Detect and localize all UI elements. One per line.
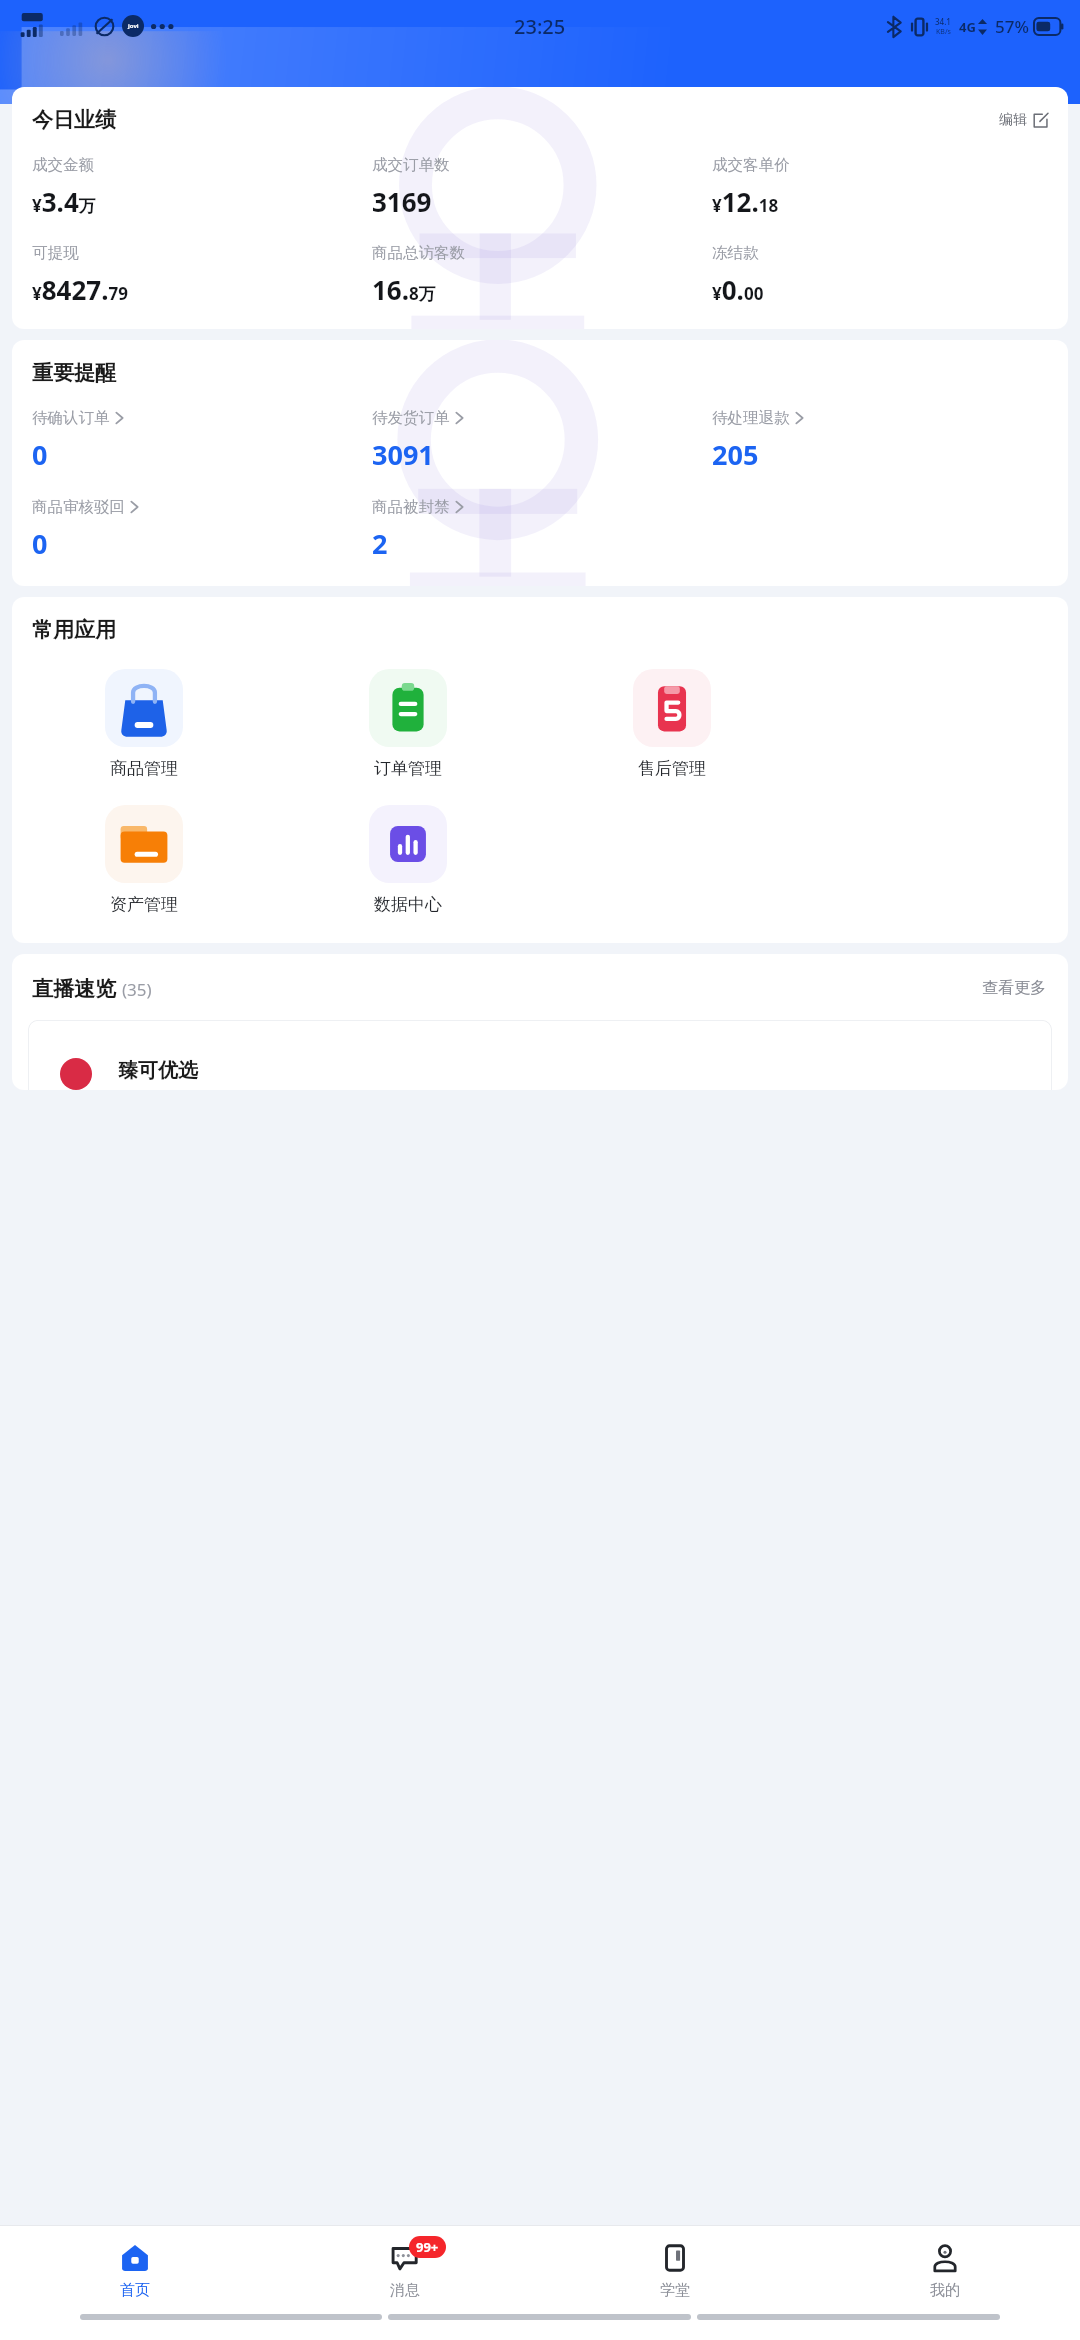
staticText: 34.1 <box>935 16 951 27</box>
staticText: 消息 <box>390 2281 420 2300</box>
button[interactable]: 查看更多 <box>978 974 1050 1002</box>
button[interactable]: 数据中心 <box>276 801 540 919</box>
staticText: 待发货订单 <box>372 408 450 428</box>
staticText: 待确认订单 <box>32 408 110 428</box>
staticText: 3091 <box>372 436 434 473</box>
staticText: 成交金额 <box>32 155 94 175</box>
button[interactable]: 首页 <box>0 2226 270 2314</box>
staticText: 编辑 <box>999 111 1027 129</box>
staticText: 23:25 <box>514 13 566 40</box>
staticText: 直播速览 <box>32 976 116 1002</box>
button[interactable]: 我的 <box>810 2226 1080 2314</box>
staticText: 待处理退款 <box>712 408 790 428</box>
staticText: 冻结款 <box>712 243 759 263</box>
staticText: 常用应用 <box>32 617 116 643</box>
staticText: 成交客单价 <box>712 155 790 175</box>
staticText: 0 <box>32 525 48 562</box>
staticText: 2 <box>372 525 388 562</box>
staticText: 首页 <box>120 2281 150 2300</box>
staticText: 今日业绩 <box>32 107 116 133</box>
staticText: 16.8万 <box>372 272 436 307</box>
staticText: 可提现 <box>32 243 79 263</box>
staticText: ¥0.00 <box>712 272 764 307</box>
button[interactable]: 售后管理 <box>540 665 804 783</box>
staticText: 商品被封禁 <box>372 497 450 517</box>
staticText: 99+ <box>416 2238 439 2256</box>
staticText: (35) <box>122 978 152 1001</box>
staticText: 臻可优选 <box>118 1058 198 1083</box>
button[interactable]: 商品管理 <box>12 665 276 783</box>
staticText: 4G <box>959 18 976 36</box>
staticText: 0 <box>32 436 48 473</box>
staticText: KB/s <box>936 27 951 37</box>
staticText: 3169 <box>372 184 432 219</box>
staticText: 重要提醒 <box>32 360 116 386</box>
staticText: 售后管理 <box>638 758 706 779</box>
button[interactable]: 待确认订单 <box>32 408 372 473</box>
staticText: 资产管理 <box>110 894 178 915</box>
staticText: 商品总访客数 <box>372 243 465 263</box>
button[interactable]: 编辑 <box>995 107 1052 133</box>
staticText: jovi <box>128 22 139 30</box>
staticText: 商品审核驳回 <box>32 497 125 517</box>
staticText: 成交订单数 <box>372 155 450 175</box>
staticText: 学堂 <box>660 2281 690 2300</box>
button[interactable]: 待发货订单 <box>372 408 712 473</box>
button[interactable]: 商品审核驳回 <box>32 497 372 562</box>
staticText: 57% <box>995 15 1029 38</box>
button[interactable]: 99+ <box>270 2226 540 2314</box>
button[interactable]: 待处理退款 <box>712 408 1052 473</box>
staticText: 订单管理 <box>374 758 442 779</box>
button[interactable]: 商品被封禁 <box>372 497 712 562</box>
staticText: ¥3.4万 <box>32 184 96 219</box>
staticText: ¥12.18 <box>712 184 779 219</box>
staticText: ¥8427.79 <box>32 272 128 307</box>
button[interactable]: 学堂 <box>540 2226 810 2314</box>
staticText: 205 <box>712 436 759 473</box>
staticText: 商品管理 <box>110 758 178 779</box>
staticText: 我的 <box>930 2281 960 2300</box>
button[interactable]: 资产管理 <box>12 801 276 919</box>
staticText: 数据中心 <box>374 894 442 915</box>
button[interactable]: 订单管理 <box>276 665 540 783</box>
button[interactable]: 臻可优选 <box>28 1020 1052 1090</box>
